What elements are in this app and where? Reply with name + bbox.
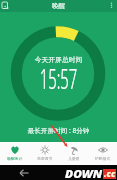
staticText: DOWN — [65, 166, 103, 178]
button[interactable]: 亮度调节 — [30, 142, 59, 165]
staticText: 唤醒统计 — [7, 156, 23, 161]
staticText: 15:57 — [40, 59, 77, 89]
staticText: 儿童锁 — [68, 156, 80, 161]
staticText: 唤醒 — [52, 2, 65, 10]
staticText: 护眼模式 — [95, 156, 111, 161]
button[interactable] — [105, 0, 117, 12]
button[interactable]: 唤醒统计 — [0, 142, 30, 165]
button[interactable]: 儿童锁 — [59, 142, 88, 165]
staticText: 亮度调节 — [37, 156, 53, 161]
staticText: 最长开屏时间 : 8分钟 — [0, 126, 117, 135]
staticText: 今天开屏总时间 — [0, 55, 117, 64]
button[interactable]: 护眼模式 — [88, 142, 117, 165]
staticText: .cc — [104, 168, 116, 178]
